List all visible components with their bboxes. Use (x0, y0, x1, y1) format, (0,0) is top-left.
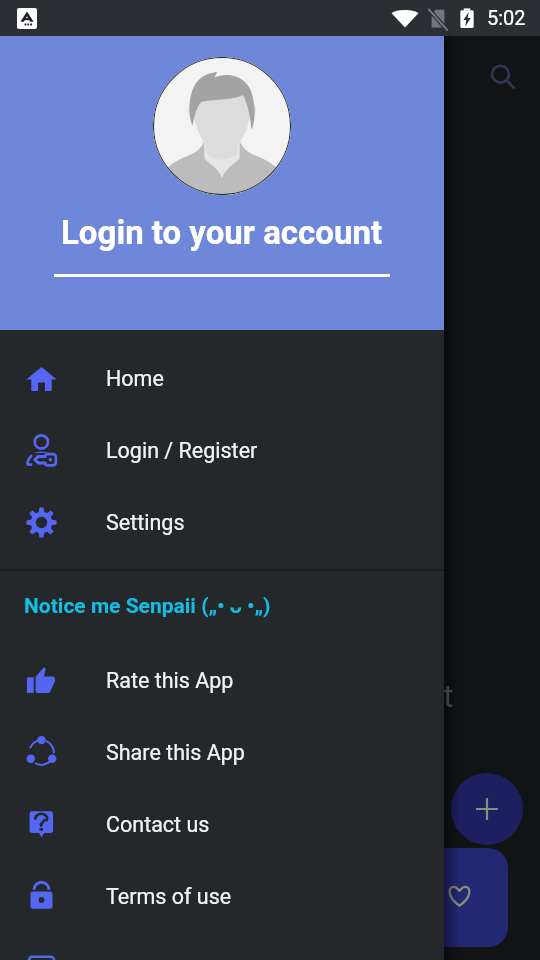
button[interactable]: Favourite (410, 848, 508, 947)
staticText: Settings (106, 510, 185, 535)
button[interactable]: Home (0, 342, 444, 414)
staticText: Share this App (106, 740, 245, 765)
button[interactable]: Terms of use (0, 860, 444, 932)
button[interactable]: Privacy Policy (0, 932, 444, 960)
staticText: Login to your account (61, 213, 383, 252)
button[interactable]: Share this App (0, 716, 444, 788)
staticText: Recent (355, 677, 454, 715)
staticText: Terms of use (106, 884, 232, 909)
staticText: Notice me Senpaii („• ᴗ •„) (24, 594, 271, 619)
staticText: Contact us (106, 812, 210, 837)
button[interactable]: Search (479, 53, 527, 101)
staticText: Login / Register (106, 438, 258, 463)
staticText: Home (106, 366, 164, 391)
button[interactable]: Settings (0, 486, 444, 558)
button[interactable]: Contact us (0, 788, 444, 860)
button[interactable]: Rate this App (0, 644, 444, 716)
button[interactable]: Add (451, 773, 523, 845)
staticText: Rate this App (106, 668, 234, 693)
button[interactable]: Login / Register (0, 414, 444, 486)
staticText: 5:02 (487, 6, 526, 29)
